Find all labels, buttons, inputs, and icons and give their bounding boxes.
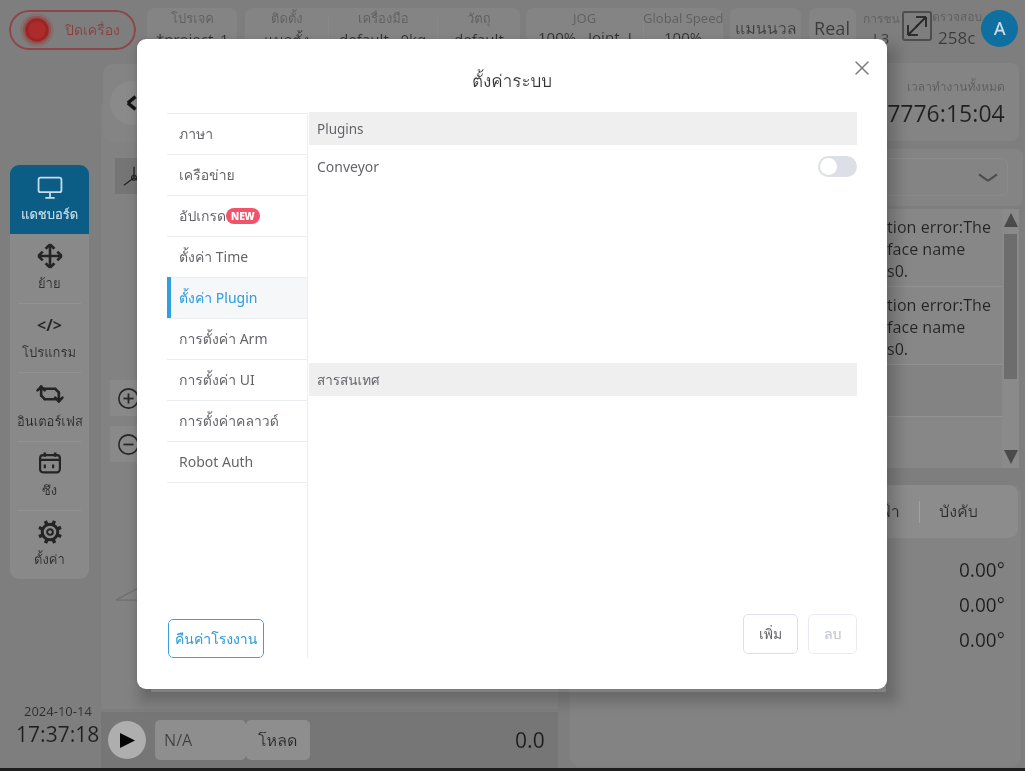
button[interactable]: อัปเกรด [167, 195, 307, 236]
button[interactable]: ซึง [10, 441, 89, 510]
button[interactable]: ปิดเครื่อง [9, 10, 136, 50]
staticText: 0.0 [515, 726, 545, 755]
button[interactable]: Global Speed [643, 8, 723, 48]
staticText: </> [37, 314, 62, 336]
button[interactable]: Select [576, 158, 1008, 196]
button[interactable]: วัตถุ [437, 8, 520, 48]
staticText: การตั้งค่า Arm [179, 328, 268, 350]
staticText: บังคับ [939, 499, 978, 524]
staticText: ปิดเครื่อง [65, 19, 120, 41]
button[interactable]: ติดตั้ง [245, 8, 328, 48]
button[interactable]: Zoom in [110, 380, 146, 416]
button[interactable]: การตั้งค่า Arm [167, 318, 307, 359]
button[interactable]: โปรเจค [147, 8, 237, 48]
button[interactable]: Play [108, 721, 146, 759]
button[interactable]: ย้าย [10, 234, 89, 303]
staticText: 100% Joint_J [538, 27, 632, 47]
staticText: การชน [863, 9, 900, 28]
button[interactable]: ตั้งค่า Plugin [167, 277, 307, 318]
staticText: ไฟฟ้า [860, 499, 900, 524]
staticText: tion error:The [887, 216, 991, 238]
staticText: ตั้งค่าระบบ [472, 67, 553, 94]
staticText: Robot Auth [179, 452, 254, 471]
button[interactable]: ตั้งค่า Time [167, 236, 307, 277]
staticText: Real [814, 16, 851, 41]
staticText: สารสนเทศ [317, 369, 380, 390]
button[interactable]: คืนค่าโรงงาน [168, 619, 264, 658]
staticText: เครื่องมือ [358, 8, 409, 29]
button[interactable]: ภาษา [167, 113, 307, 154]
staticText: N/A [164, 729, 193, 751]
button[interactable]: Real [809, 8, 856, 48]
staticText: Conveyor [317, 157, 380, 176]
staticText: ตั้งค่า Time [179, 246, 249, 268]
staticText: L3 [873, 28, 890, 48]
staticText: 17:37:18 [16, 720, 100, 749]
staticText: ลบ [824, 623, 842, 645]
button[interactable]: Conveyor toggle [818, 156, 857, 177]
button[interactable]: เครือข่าย [167, 154, 307, 195]
staticText: แนวตั้ง [264, 29, 310, 48]
staticText: ซึง [42, 480, 58, 501]
button[interactable]: Zoom out [110, 426, 146, 462]
button[interactable]: </> [10, 303, 89, 372]
staticText: โปรเจค [171, 8, 214, 29]
button[interactable]: แดชบอร์ด [10, 165, 89, 234]
button[interactable]: Close [849, 55, 875, 81]
button[interactable]: ลบ [808, 614, 857, 654]
staticText: แดชบอร์ด [21, 204, 79, 225]
button[interactable]: การตั้งค่าคลาวด์ [167, 400, 307, 441]
staticText: เวลาทำงานทั้งหมด [907, 77, 1005, 96]
staticText: A [994, 16, 1006, 41]
staticText: face name [887, 238, 966, 260]
staticText: *project_1 [156, 29, 229, 48]
staticText: โหลด [258, 728, 298, 753]
button[interactable]: A [981, 10, 1018, 47]
staticText: การตั้งค่า UI [179, 369, 255, 391]
staticText: 27776:15:04 [874, 97, 1005, 128]
staticText: ย้าย [38, 273, 61, 294]
staticText: JOG [573, 9, 597, 27]
staticText: การตั้งค่าคลาวด์ [179, 410, 279, 432]
button[interactable]: Robot Auth [167, 441, 307, 482]
staticText: ตั้งค่า [34, 549, 65, 570]
button[interactable]: เพิ่ม [743, 614, 798, 654]
staticText: ติดตั้ง [271, 8, 303, 29]
staticText: 0.00° [959, 557, 1005, 583]
button[interactable]: เครื่องมือ [328, 8, 437, 48]
button[interactable]: Robot view [115, 158, 153, 194]
staticText: default [454, 29, 504, 48]
button[interactable]: การตั้งค่า UI [167, 359, 307, 400]
staticText: ภาษา [179, 123, 214, 145]
staticText: tion error:The [887, 294, 991, 316]
staticText: default 0kg [339, 29, 427, 48]
staticText: 258c [938, 26, 976, 49]
staticText: Global Speed [643, 9, 723, 27]
staticText: แมนนวล [735, 16, 797, 41]
button[interactable]: JOG [526, 8, 643, 48]
staticText: ตั้งค่า Plugin [179, 287, 258, 309]
staticText: วัตถุ [467, 8, 491, 29]
staticText: 0.00° [959, 627, 1005, 653]
button[interactable]: ตั้งค่า [10, 510, 89, 579]
staticText: Plugins [317, 120, 364, 138]
staticText: 0.00° [959, 592, 1005, 618]
button[interactable]: แมนนวล [730, 8, 801, 48]
staticText: face name [887, 316, 966, 338]
staticText: เพิ่ม [759, 623, 783, 645]
staticText: อัปเกรด [179, 205, 227, 227]
staticText: เครือข่าย [179, 164, 235, 186]
staticText: 2024-10-14 [24, 702, 92, 720]
staticText: 100% [664, 27, 703, 47]
button[interactable]: อินเตอร์เฟส [10, 372, 89, 441]
button[interactable]: Fullscreen [902, 11, 932, 41]
button[interactable]: โหลด [246, 720, 310, 760]
staticText: คืนค่าโรงงาน [175, 628, 258, 650]
staticText: s0. [887, 260, 909, 282]
staticText: โปรแกรม [22, 342, 77, 363]
button[interactable]: Back [103, 64, 161, 142]
staticText: อินเตอร์เฟส [17, 411, 83, 432]
